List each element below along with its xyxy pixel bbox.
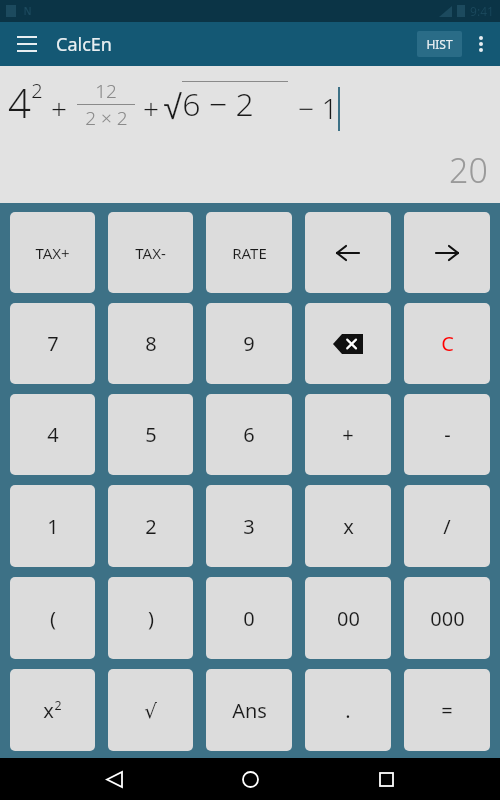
staticText: = (441, 697, 453, 724)
button[interactable]: = (404, 669, 490, 751)
staticText: TAX- (135, 243, 166, 263)
button[interactable]: 5 (108, 394, 193, 475)
button[interactable]: 4 (10, 394, 95, 475)
button[interactable]: C (404, 303, 490, 384)
button[interactable]: RATE (206, 212, 292, 293)
staticText: . (345, 697, 351, 724)
staticText: 9 (243, 330, 255, 357)
staticText: 8 (145, 330, 157, 357)
staticText: x (343, 513, 354, 540)
button[interactable]: 00 (305, 577, 391, 659)
staticText: 5 (145, 421, 157, 448)
staticText: HIST (426, 36, 453, 52)
button[interactable]: TAX+ (10, 212, 95, 293)
button[interactable]: Home (228, 758, 272, 800)
staticText: − 1 (298, 89, 338, 127)
button[interactable]: Ans (206, 669, 292, 751)
staticText: ) (148, 605, 154, 632)
staticText: x (43, 697, 54, 724)
button[interactable]: Recents (364, 758, 408, 800)
button[interactable]: . (305, 669, 391, 751)
button[interactable]: ) (108, 577, 193, 659)
staticText: + (342, 421, 354, 448)
button[interactable]: More options (466, 29, 496, 59)
staticText: 6 (243, 421, 255, 448)
staticText: CalcEn (56, 32, 112, 57)
button[interactable]: + (305, 394, 391, 475)
button[interactable]: 2 (108, 485, 193, 567)
button[interactable]: HIST (417, 31, 462, 57)
staticText: - (444, 421, 451, 448)
staticText: 3 (243, 513, 255, 540)
staticText: 00 (337, 605, 360, 632)
staticText: 9:41 (470, 3, 494, 19)
staticText: √ (144, 699, 157, 722)
staticText: TAX+ (35, 243, 70, 263)
staticText: RATE (232, 243, 267, 263)
staticText: 4 (47, 421, 59, 448)
staticText: 1 (47, 513, 59, 540)
button[interactable]: Back (92, 758, 136, 800)
staticText: ( (50, 605, 56, 632)
staticText: C (441, 330, 454, 357)
button[interactable]: 1 (10, 485, 95, 567)
button[interactable]: 000 (404, 577, 490, 659)
button[interactable]: x (10, 669, 95, 751)
staticText: 7 (47, 330, 59, 357)
staticText: 2 × 2 (85, 105, 128, 131)
button[interactable]: 0 (206, 577, 292, 659)
staticText: 0 (243, 605, 255, 632)
button[interactable]: 7 (10, 303, 95, 384)
staticText: 4 (8, 75, 31, 129)
button[interactable]: / (404, 485, 490, 567)
button[interactable]: - (404, 394, 490, 475)
button[interactable]: 6 (206, 394, 292, 475)
button[interactable]: TAX- (108, 212, 193, 293)
button[interactable]: Move left (305, 212, 391, 293)
button[interactable]: ( (10, 577, 95, 659)
staticText: Ans (232, 697, 267, 724)
staticText: 2 (31, 77, 43, 104)
staticText: 20 (449, 147, 488, 193)
button[interactable]: x (305, 485, 391, 567)
button[interactable]: 9 (206, 303, 292, 384)
staticText: √ (163, 88, 182, 126)
button[interactable]: √ (108, 669, 193, 751)
staticText: 2 (145, 513, 157, 540)
staticText: 000 (430, 605, 465, 632)
staticText: 12 (95, 78, 117, 104)
staticText: N (23, 4, 32, 18)
staticText: 2 (54, 697, 62, 714)
staticText: / (443, 513, 451, 540)
button[interactable]: 8 (108, 303, 193, 384)
button[interactable]: Backspace (305, 303, 391, 384)
staticText: 6 − 2 (182, 82, 254, 126)
staticText: + (143, 89, 159, 127)
button[interactable]: Menu (10, 27, 44, 61)
staticText: + (51, 89, 67, 127)
button[interactable]: Move right (404, 212, 490, 293)
button[interactable]: 3 (206, 485, 292, 567)
